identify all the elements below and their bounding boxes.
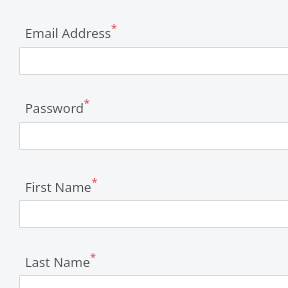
staticText: First Name* — [25, 174, 98, 195]
staticText: Last Name* — [25, 249, 97, 270]
staticText: Password* — [25, 95, 90, 116]
button[interactable]: First Name — [19, 200, 288, 228]
staticText: Email Address* — [25, 20, 118, 41]
button[interactable]: Password — [19, 122, 288, 150]
button[interactable]: Email Address — [19, 47, 288, 75]
button[interactable]: Last Name — [19, 275, 288, 288]
